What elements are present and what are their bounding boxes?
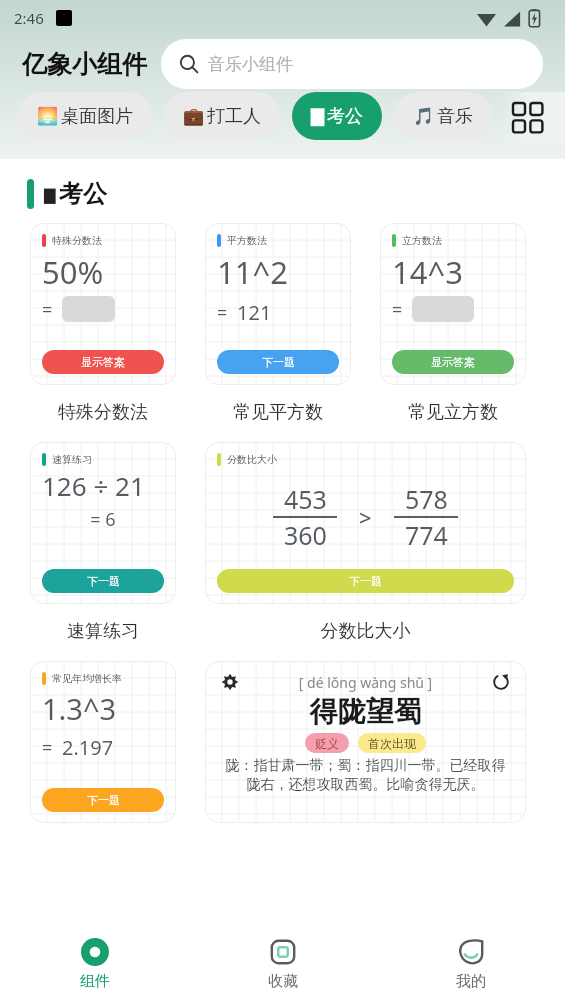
staticText: 亿象小组件 <box>22 49 147 80</box>
staticText: 2.197 <box>62 734 114 761</box>
staticText: 考公 <box>327 105 363 128</box>
button[interactable]: 下一题 <box>217 569 514 593</box>
staticText: 126 ÷ 21 <box>42 468 145 503</box>
staticText: 下一题 <box>87 574 120 588</box>
staticText: 桌面图片 <box>61 105 133 128</box>
staticText: 1.3^3 <box>42 689 117 728</box>
staticText: 立方数法 <box>402 234 442 247</box>
staticText: 显示答案 <box>81 355 125 369</box>
button[interactable]: 显示答案 <box>392 350 514 374</box>
staticText: 速算练习 <box>30 620 176 643</box>
button[interactable]: 立方数法 <box>380 223 526 385</box>
staticText: 下一题 <box>262 355 295 369</box>
staticText: ▇ <box>44 186 56 203</box>
staticText: 平方数法 <box>227 234 267 247</box>
staticText: 2:46 <box>14 8 44 28</box>
staticText: 453 <box>284 482 327 516</box>
staticText: [ dé lǒng wàng shǔ ] <box>241 673 490 692</box>
staticText: 特殊分数法 <box>52 234 102 247</box>
staticText: 我的 <box>456 972 486 991</box>
button[interactable]: 收藏 <box>189 924 377 1004</box>
button[interactable]: 🌅 <box>18 92 152 140</box>
staticText: ▇ <box>311 106 325 126</box>
staticText: 💼 <box>183 106 205 126</box>
button[interactable]: All categories <box>507 97 549 139</box>
staticText: 下一题 <box>349 574 382 588</box>
staticText: 常见平方数 <box>205 401 351 424</box>
staticText: 特殊分数法 <box>30 401 176 424</box>
staticText: > <box>359 502 372 532</box>
button[interactable]: 特殊分数法 <box>30 223 176 385</box>
staticText: 考公 <box>59 179 107 209</box>
button[interactable]: Settings <box>219 671 241 693</box>
button[interactable]: 下一题 <box>42 788 164 812</box>
staticText: 分数比大小 <box>205 620 526 643</box>
staticText: 组件 <box>80 972 110 991</box>
staticText: 121 <box>237 299 272 326</box>
staticText: 速算练习 <box>52 453 92 466</box>
staticText: 11^2 <box>217 251 288 293</box>
button[interactable]: ▇ <box>292 92 382 140</box>
button[interactable]: Settings <box>205 661 526 823</box>
staticText: = <box>392 297 403 322</box>
button[interactable]: 组件 <box>0 924 189 1004</box>
staticText: 🎵 <box>413 106 435 126</box>
staticText: 774 <box>405 518 448 552</box>
staticText: 首次出现 <box>368 736 416 751</box>
staticText: 578 <box>405 482 448 516</box>
staticText: 得陇望蜀 <box>219 694 512 729</box>
button[interactable]: 速算练习 <box>30 442 176 604</box>
staticText: 打工人 <box>207 105 261 128</box>
staticText: 🌅 <box>37 106 59 126</box>
button[interactable]: 💼 <box>164 92 280 140</box>
staticText: 收藏 <box>268 972 298 991</box>
button[interactable]: 显示答案 <box>42 350 164 374</box>
staticText: 显示答案 <box>431 355 475 369</box>
staticText: = <box>42 297 53 322</box>
button[interactable]: 平方数法 <box>205 223 351 385</box>
staticText: 14^3 <box>392 251 463 293</box>
button[interactable]: 下一题 <box>217 350 339 374</box>
button[interactable]: Refresh <box>490 671 512 693</box>
button[interactable]: 🎵 <box>394 92 492 140</box>
staticText: 常见年均增长率 <box>52 672 122 685</box>
button[interactable]: 下一题 <box>42 569 164 593</box>
staticText: = <box>42 735 53 760</box>
staticText: = 6 <box>42 507 164 532</box>
staticText: 音乐小组件 <box>208 54 293 75</box>
staticText: 陇：指甘肃一带；蜀：指四川一带。已经取得陇右，还想攻取西蜀。比喻贪得无厌。 <box>219 757 512 793</box>
button[interactable]: 音乐小组件 <box>161 39 543 89</box>
staticText: 下一题 <box>87 793 120 807</box>
button[interactable]: 我的 <box>377 924 565 1004</box>
staticText: 常见立方数 <box>380 401 526 424</box>
staticText: = <box>217 300 228 325</box>
staticText: 50% <box>42 251 104 293</box>
staticText: 分数比大小 <box>227 453 277 466</box>
staticText: 360 <box>284 518 327 552</box>
button[interactable]: 常见年均增长率 <box>30 661 176 823</box>
button[interactable]: 分数比大小 <box>205 442 526 604</box>
staticText: 贬义 <box>315 736 339 751</box>
staticText: 音乐 <box>437 105 473 128</box>
